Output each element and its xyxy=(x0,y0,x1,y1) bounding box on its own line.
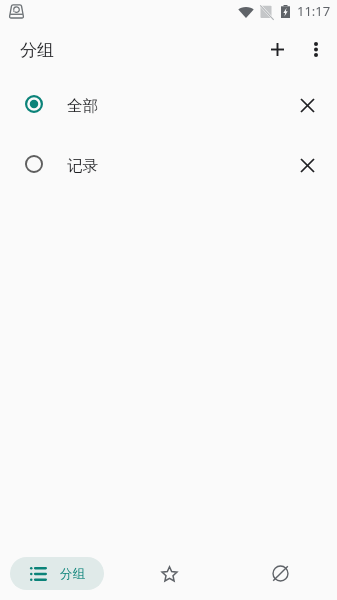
staticText: 分组 xyxy=(20,40,54,61)
button[interactable]: 全部 xyxy=(0,74,337,134)
staticText: 记录 xyxy=(67,156,98,176)
staticText: 全部 xyxy=(67,96,98,116)
button[interactable]: Favorites xyxy=(113,546,225,600)
staticText: 11:17 xyxy=(297,2,331,20)
button[interactable]: Add group xyxy=(255,27,299,71)
button[interactable]: Remove 全部 xyxy=(285,82,329,126)
button[interactable]: Remove 记录 xyxy=(285,142,329,186)
staticText: 分组 xyxy=(60,566,85,582)
button[interactable]: Explore xyxy=(225,546,337,600)
button[interactable]: 记录 xyxy=(0,134,337,194)
button[interactable]: 分组 xyxy=(0,546,113,600)
button[interactable]: More options xyxy=(296,29,336,69)
